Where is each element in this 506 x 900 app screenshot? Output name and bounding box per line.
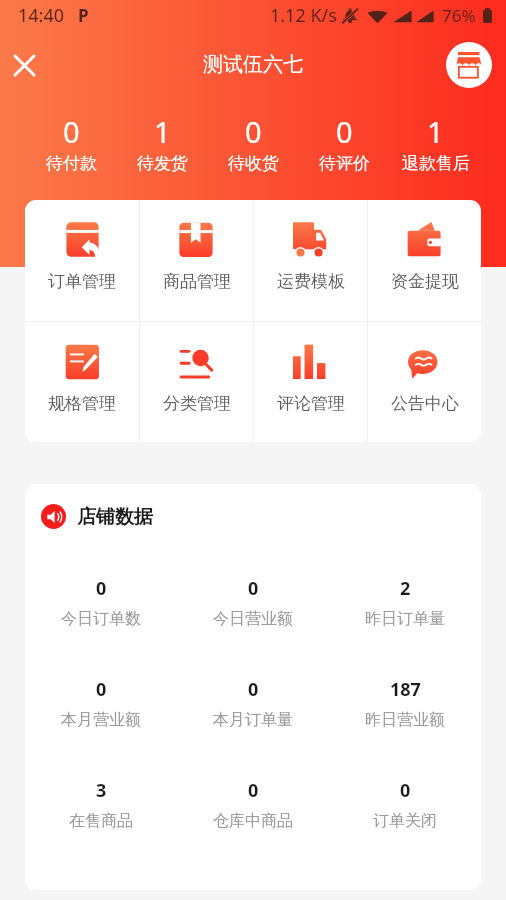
staticText: 0: [248, 576, 259, 601]
button[interactable]: 1: [390, 98, 481, 200]
button[interactable]: 规格管理: [25, 322, 139, 442]
staticText: 在售商品: [69, 811, 133, 831]
staticText: 待评价: [319, 153, 370, 174]
staticText: 0: [63, 112, 80, 151]
button[interactable]: 店铺数据: [41, 504, 153, 529]
staticText: 商品管理: [163, 271, 231, 292]
button[interactable]: Shop: [446, 42, 492, 88]
staticText: 今日订单数: [61, 609, 141, 629]
button[interactable]: 评论管理: [254, 322, 367, 442]
staticText: 1: [427, 112, 444, 151]
staticText: 14:40: [18, 3, 65, 28]
staticText: 76%: [442, 4, 476, 27]
button[interactable]: 分类管理: [140, 322, 253, 442]
button[interactable]: 0: [299, 98, 390, 200]
button[interactable]: 运费模板: [254, 200, 367, 321]
staticText: 店铺数据: [77, 505, 153, 529]
staticText: 今日营业额: [213, 609, 293, 629]
staticText: 0: [400, 778, 411, 803]
staticText: 3: [96, 778, 107, 803]
button[interactable]: 0: [329, 778, 481, 831]
button[interactable]: 0: [177, 677, 329, 730]
staticText: 0: [336, 112, 353, 151]
button[interactable]: 商品管理: [140, 200, 253, 321]
staticText: 订单管理: [48, 271, 116, 292]
button[interactable]: 1: [117, 98, 208, 200]
staticText: 1.12 K/s: [270, 3, 337, 28]
button[interactable]: 0: [177, 778, 329, 831]
button[interactable]: 公告中心: [368, 322, 481, 442]
button[interactable]: 资金提现: [368, 200, 481, 321]
button[interactable]: 2: [329, 576, 481, 629]
staticText: P: [78, 4, 89, 27]
staticText: 待付款: [46, 153, 97, 174]
staticText: 2: [400, 576, 411, 601]
staticText: 资金提现: [391, 271, 459, 292]
staticText: 待发货: [137, 153, 188, 174]
staticText: 测试伍六七: [203, 52, 303, 77]
staticText: 退款售后: [402, 153, 470, 174]
staticText: 本月订单量: [213, 710, 293, 730]
staticText: 0: [96, 576, 107, 601]
staticText: 0: [96, 677, 107, 702]
staticText: 评论管理: [277, 393, 345, 414]
staticText: 1: [154, 112, 171, 151]
staticText: 仓库中商品: [213, 811, 293, 831]
staticText: 订单关闭: [373, 811, 437, 831]
staticText: 规格管理: [48, 393, 116, 414]
button[interactable]: Close: [4, 45, 44, 85]
staticText: 0: [248, 677, 259, 702]
staticText: 分类管理: [163, 393, 231, 414]
button[interactable]: 0: [25, 677, 177, 730]
staticText: 本月营业额: [61, 710, 141, 730]
staticText: 0: [248, 778, 259, 803]
staticText: 187: [390, 677, 421, 702]
button[interactable]: 0: [25, 576, 177, 629]
button[interactable]: 0: [177, 576, 329, 629]
staticText: 昨日订单量: [365, 609, 445, 629]
button[interactable]: 0: [25, 98, 117, 200]
button[interactable]: 订单管理: [25, 200, 139, 321]
staticText: 运费模板: [277, 271, 345, 292]
button[interactable]: 0: [208, 98, 299, 200]
staticText: 公告中心: [391, 393, 459, 414]
button[interactable]: 187: [329, 677, 481, 730]
button[interactable]: 3: [25, 778, 177, 831]
staticText: 待收货: [228, 153, 279, 174]
staticText: 昨日营业额: [365, 710, 445, 730]
staticText: 0: [245, 112, 262, 151]
